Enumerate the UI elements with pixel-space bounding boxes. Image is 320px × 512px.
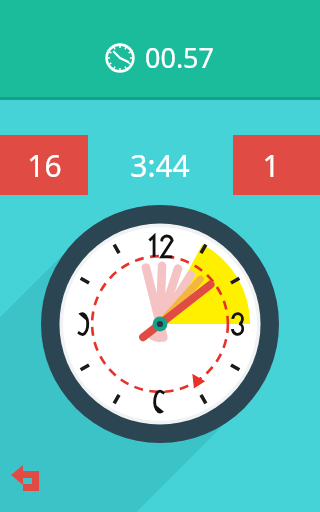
other: Timer — [105, 43, 135, 73]
staticText: 1 — [262, 145, 280, 186]
button[interactable]: Clock face — [41, 205, 279, 443]
staticText: 3:44 — [130, 145, 190, 186]
button[interactable]: 1 — [233, 135, 320, 195]
staticText: 16 — [27, 145, 62, 186]
button[interactable]: Timer — [0, 0, 320, 97]
button[interactable]: Undo — [8, 458, 54, 504]
staticText: 00.57 — [145, 39, 215, 76]
button[interactable]: 16 — [0, 135, 88, 195]
